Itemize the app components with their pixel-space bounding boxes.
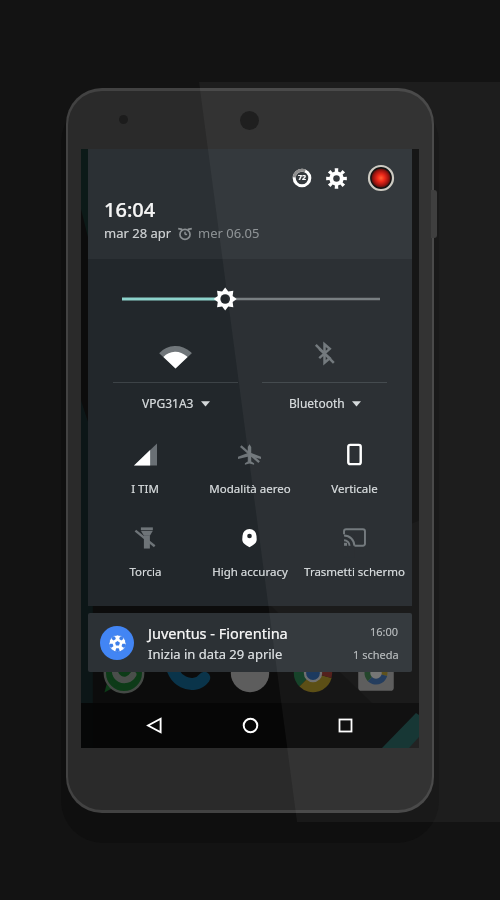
button[interactable]: Modalità aereo (197, 443, 302, 497)
staticText: 1 scheda (353, 647, 399, 662)
button[interactable]: Torcia (93, 526, 197, 580)
staticText: 16:00 (370, 624, 399, 639)
staticText: mar 28 apr (104, 224, 172, 242)
button[interactable]: Trasmetti schermo (302, 526, 407, 580)
staticText: VPG31A3 (142, 395, 194, 411)
button[interactable]: Recents (323, 703, 368, 748)
button[interactable] (100, 649, 148, 697)
button[interactable]: Settings (323, 165, 349, 191)
button[interactable]: High accuracy (197, 526, 302, 580)
button[interactable] (289, 649, 337, 697)
button[interactable]: Home (228, 703, 273, 748)
button[interactable]: VPG31A3 (101, 395, 250, 411)
button[interactable] (226, 649, 274, 697)
button[interactable] (163, 649, 211, 697)
staticText: Trasmetti schermo (304, 564, 405, 580)
staticText: Verticale (331, 481, 378, 497)
button[interactable] (352, 649, 400, 697)
staticText: Torcia (129, 564, 162, 580)
button[interactable]: Bluetooth (250, 395, 399, 411)
button[interactable]: I TIM (93, 443, 197, 497)
button[interactable] (101, 337, 250, 369)
staticText: 72 (298, 173, 307, 183)
staticText: Modalità aereo (209, 481, 291, 497)
button[interactable]: Verticale (302, 443, 407, 497)
button[interactable]: Juventus - Fiorentina (88, 613, 412, 672)
staticText: mer 06.05 (198, 224, 260, 242)
button[interactable]: Back (132, 703, 177, 748)
button[interactable] (250, 337, 399, 369)
button[interactable]: Record (368, 165, 394, 191)
staticText: Bluetooth (289, 395, 345, 411)
staticText: I TIM (131, 481, 159, 497)
staticText: 16:04 (104, 196, 156, 223)
staticText: Juventus - Fiorentina (148, 623, 288, 643)
staticText: Inizia in data 29 aprile (148, 645, 283, 663)
staticText: High accuracy (212, 564, 288, 580)
button[interactable]: Battery 72 percent (289, 165, 315, 191)
